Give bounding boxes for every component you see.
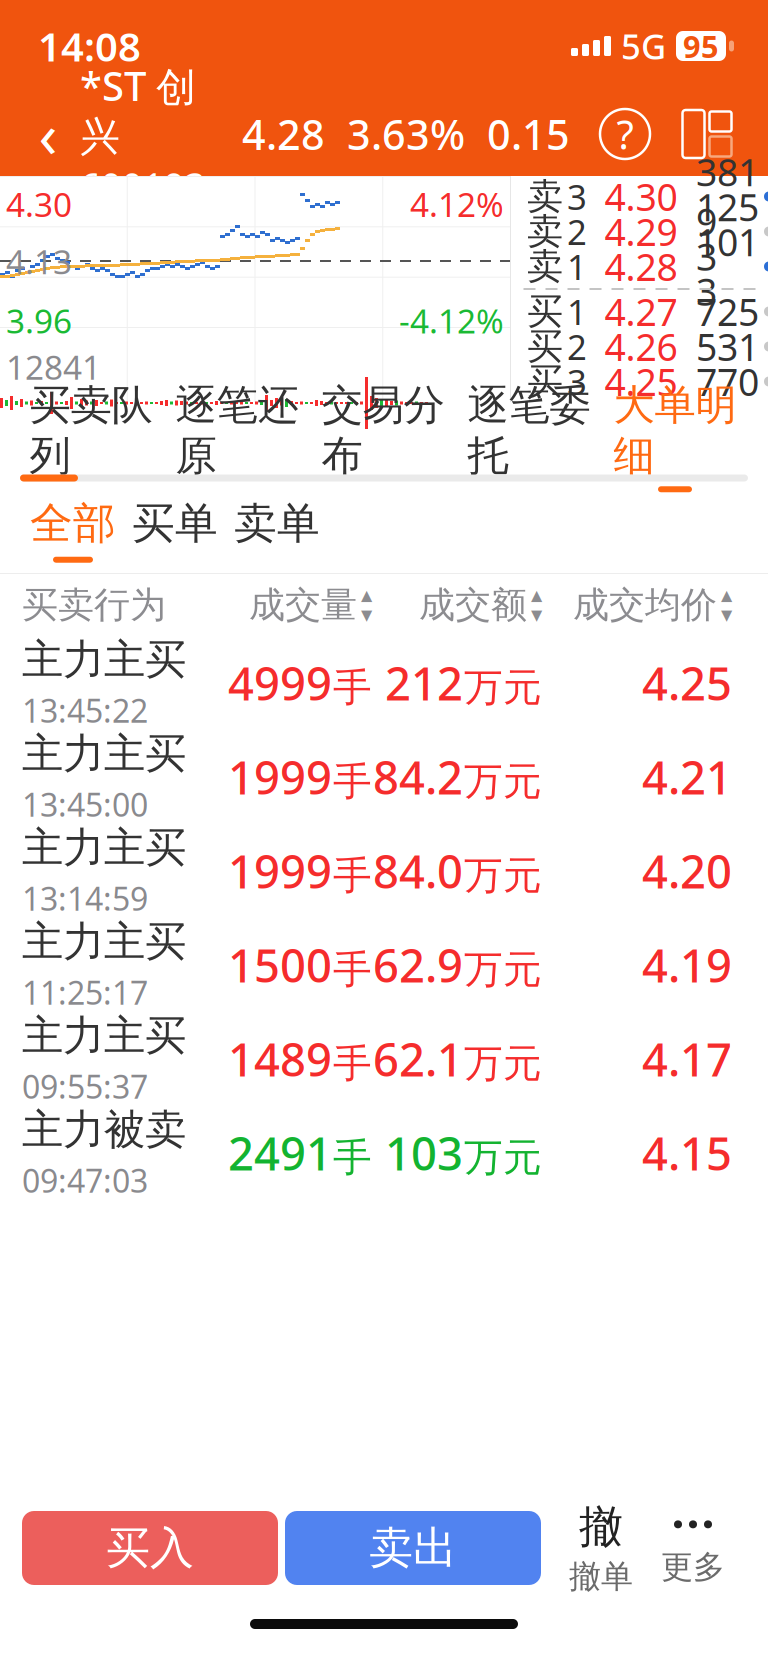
staticText: 1999 [228, 841, 332, 901]
staticText: 大单明细 [613, 380, 736, 481]
staticText: 成交额 [419, 583, 527, 627]
button[interactable]: 买卖队列 [18, 402, 164, 470]
staticText: 4.12% [410, 182, 504, 226]
staticText: 4.17 [642, 1029, 732, 1089]
button[interactable]: 成交量 [249, 583, 372, 627]
staticText: 卖出 [369, 1521, 457, 1575]
staticText: 主力被卖 [22, 1104, 186, 1155]
button[interactable]: 买入 [22, 1511, 278, 1585]
staticText: 卖 [527, 244, 563, 289]
staticText: 更多 [661, 1547, 725, 1587]
staticText: 卖单 [234, 497, 320, 550]
staticText: 11:25:17 [22, 971, 148, 1014]
staticText: 14:08 [38, 19, 141, 72]
staticText: 4.21 [642, 747, 732, 807]
staticText: 万元 [464, 1134, 542, 1181]
button[interactable]: 主力主买 [0, 730, 768, 824]
staticText: 770 [696, 357, 759, 406]
staticText: 84.2 [373, 747, 463, 807]
staticText: 3 [567, 358, 587, 404]
staticText: 买卖行为 [22, 583, 166, 627]
button[interactable]: 成交额 [419, 583, 542, 627]
staticText: 725 [696, 287, 759, 336]
staticText: 2 [567, 208, 587, 254]
staticText: 买 [527, 359, 563, 404]
staticText: 万元 [464, 1040, 542, 1087]
button[interactable]: 撤 [559, 1508, 643, 1588]
staticText: 09:47:03 [22, 1159, 148, 1202]
staticText: ▲ [531, 587, 542, 603]
button[interactable]: 主力被卖 [0, 1106, 768, 1200]
staticText: 4.15 [642, 1123, 732, 1183]
button[interactable]: 切换布局 [676, 106, 738, 162]
button[interactable]: 逐笔还原 [164, 402, 310, 470]
staticText: ▼ [531, 606, 542, 623]
staticText: -4.12% [399, 298, 504, 343]
staticText: 手 [333, 1040, 372, 1087]
staticText: 4.29 [604, 207, 677, 256]
staticText: 4.26 [604, 322, 677, 371]
staticText: 12841 [6, 345, 101, 389]
staticText: 3 [567, 173, 587, 219]
staticText: 4.25 [642, 653, 732, 713]
staticText: 手 [333, 946, 372, 993]
staticText: 62.9 [373, 935, 463, 995]
staticText: 手 [333, 852, 372, 899]
button[interactable]: 主力主买 [0, 636, 768, 730]
staticText: 买单 [132, 497, 218, 550]
staticText: 全部 [30, 497, 116, 550]
staticText: ‹ [38, 93, 57, 175]
staticText: 2 [567, 323, 587, 369]
button[interactable]: 买单 [124, 489, 226, 571]
staticText: 逐笔还原 [175, 380, 298, 481]
button[interactable]: 帮助 [600, 109, 650, 159]
staticText: 主力主买 [22, 822, 186, 873]
staticText: 买卖队列 [29, 380, 152, 481]
button[interactable]: 卖出 [285, 1511, 541, 1585]
button[interactable]: 逐笔委托 [456, 402, 602, 470]
staticText: 手 [333, 758, 372, 805]
staticText: 3819 [696, 147, 759, 246]
staticText: 103 [385, 1123, 463, 1183]
staticText: 手 [333, 1134, 372, 1181]
staticText: ? [616, 107, 633, 160]
staticText: *ST 创兴 [80, 59, 196, 161]
button[interactable]: 交易分布 [310, 402, 456, 470]
staticText: 531 [696, 322, 759, 371]
staticText: 95 [683, 26, 719, 66]
staticText: 手 [333, 664, 372, 711]
staticText: 600193 [80, 161, 206, 209]
staticText: 买 [527, 289, 563, 334]
staticText: 主力主买 [22, 916, 186, 967]
button[interactable]: 主力主买 [0, 824, 768, 918]
button[interactable]: 返回 [16, 92, 80, 176]
staticText: 成交均价 [573, 583, 717, 627]
button[interactable]: 主力主买 [0, 918, 768, 1012]
button[interactable]: 全部 [22, 489, 124, 571]
staticText: 主力主买 [22, 728, 186, 779]
staticText: 09:55:37 [22, 1065, 148, 1108]
staticText: 4.27 [604, 287, 677, 336]
button[interactable]: 更多 [651, 1508, 735, 1588]
button[interactable]: 成交均价 [573, 583, 732, 627]
staticText: 万元 [464, 758, 542, 805]
button[interactable]: 主力主买 [0, 1012, 768, 1106]
button[interactable]: 卖单 [226, 489, 328, 571]
staticText: 84.0 [373, 841, 463, 901]
staticText: 万元 [464, 664, 542, 711]
staticText: 1013 [696, 217, 759, 316]
staticText: 1999 [228, 747, 332, 807]
staticText: 卖 [527, 174, 563, 219]
staticText: 4.30 [6, 182, 72, 226]
staticText: 4.13 [6, 239, 72, 283]
staticText: 主力主买 [22, 634, 186, 685]
staticText: 13:45:00 [22, 783, 148, 826]
staticText: 62.1 [373, 1029, 463, 1089]
staticText: 1489 [228, 1029, 332, 1089]
button[interactable]: 大单明细 [602, 402, 748, 470]
staticText: 13:14:59 [22, 877, 148, 920]
staticText: 逐笔委托 [467, 380, 590, 481]
staticText: 3.96 [6, 298, 72, 343]
staticText: 4.25 [604, 357, 677, 406]
staticText: 买入 [106, 1521, 194, 1575]
